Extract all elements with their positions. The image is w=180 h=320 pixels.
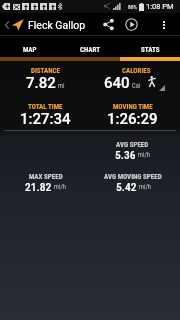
staticText: 1:26:29 [107, 110, 158, 128]
staticText: 7.82 [26, 74, 56, 92]
staticText: Fleck Gallop [28, 19, 86, 31]
button[interactable]: STATS [120, 36, 180, 61]
staticText: Cal [132, 82, 141, 90]
staticText: 1:08 PM [146, 2, 174, 11]
staticText: CHART [80, 46, 101, 54]
button[interactable]: Share [97, 13, 120, 36]
staticText: 21.82 [25, 180, 52, 193]
staticText: 5.42 [116, 180, 137, 193]
staticText: 5.36 [115, 148, 136, 161]
staticText: MOVING TIME [113, 103, 153, 111]
staticText: STATS [141, 46, 160, 54]
staticText: AVG SPEED [116, 141, 149, 149]
staticText: TOTAL TIME [28, 103, 63, 111]
staticText: CALORIES [122, 67, 151, 75]
button[interactable]: More options [155, 13, 173, 36]
staticText: DISTANCE [31, 67, 60, 75]
staticText: AVG MOVING SPEED [104, 173, 162, 181]
button[interactable]: MAP [0, 36, 60, 61]
staticText: 1:27:34 [20, 110, 71, 128]
button[interactable]: Play [120, 13, 143, 36]
staticText: mi/h [138, 151, 150, 159]
staticText: mi/h [139, 183, 151, 191]
staticText: MAX SPEED [29, 173, 63, 181]
staticText: mi/h [54, 183, 66, 191]
button[interactable]: CHART [60, 36, 120, 61]
button[interactable]: Navigate up [0, 13, 13, 36]
staticText: mi [58, 82, 65, 90]
staticText: MAP [23, 46, 37, 54]
staticText: 80% [128, 4, 138, 10]
staticText: 640 [104, 74, 130, 92]
